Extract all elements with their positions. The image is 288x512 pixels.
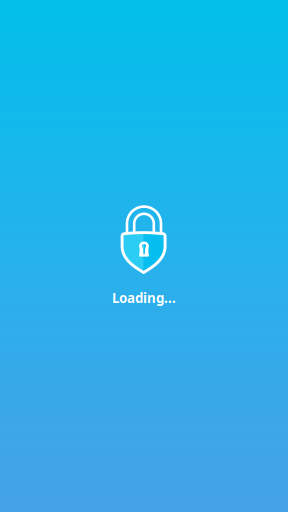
staticText: Loading...	[112, 289, 176, 307]
